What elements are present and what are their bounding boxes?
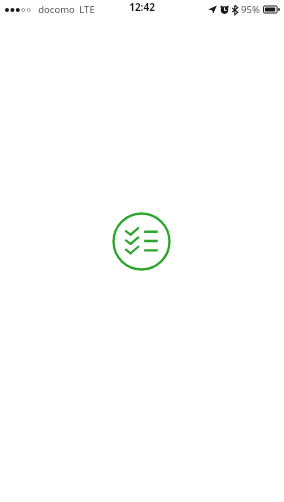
staticText: LTE [79,3,95,16]
staticText: docomo [38,3,75,16]
button[interactable]: App logo [112,212,171,271]
staticText: 95% [241,3,260,16]
staticText: 12:42 [129,0,155,14]
